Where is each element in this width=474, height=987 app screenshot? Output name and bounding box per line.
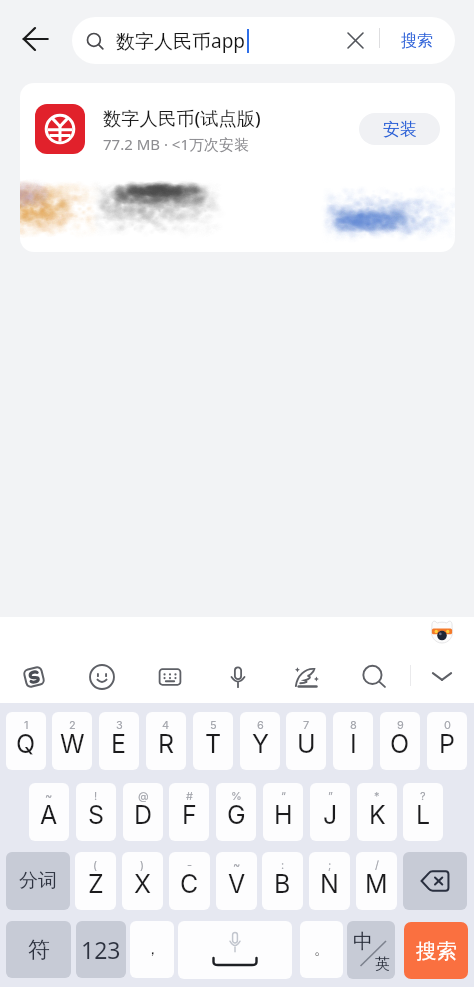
staticText: 3	[116, 718, 123, 731]
button[interactable]: 。	[300, 921, 343, 978]
staticText: ”	[328, 789, 333, 802]
staticText: “	[281, 789, 286, 802]
staticText: )	[140, 858, 145, 871]
staticText: 6	[257, 718, 264, 731]
staticText: S	[88, 800, 105, 830]
staticText: 符	[28, 936, 50, 964]
staticText: *	[374, 789, 380, 802]
button[interactable]: Keyboard layout	[148, 655, 192, 699]
button[interactable]: Chinese English toggle	[347, 921, 395, 979]
staticText: @	[138, 789, 149, 802]
staticText: T	[205, 729, 222, 759]
button[interactable]: 分词	[6, 852, 70, 910]
button[interactable]: ~	[29, 783, 69, 841]
button[interactable]: “	[263, 783, 303, 841]
staticText: A	[40, 800, 58, 830]
staticText: 2	[69, 718, 76, 731]
button[interactable]: Backspace	[403, 852, 467, 910]
button[interactable]: 8	[333, 712, 373, 770]
button[interactable]: ?	[403, 783, 443, 841]
staticText: C	[180, 869, 199, 899]
button[interactable]: ~	[216, 852, 257, 910]
button[interactable]: -	[169, 852, 210, 910]
button[interactable]: %	[216, 783, 256, 841]
staticText: K	[369, 800, 386, 830]
staticText: (	[93, 858, 98, 871]
staticText: V	[228, 869, 246, 899]
button[interactable]: 搜索	[404, 922, 468, 979]
staticText: 数字人民币app	[116, 28, 246, 54]
button[interactable]: 6	[240, 712, 280, 770]
staticText: 英	[375, 955, 390, 974]
button[interactable]: )	[122, 852, 163, 910]
button[interactable]: Search	[352, 655, 396, 699]
button[interactable]: 2	[52, 712, 92, 770]
button[interactable]: 4	[146, 712, 186, 770]
button[interactable]: 安装	[359, 113, 440, 145]
staticText: 安装	[383, 119, 417, 140]
staticText: G	[227, 800, 246, 830]
staticText: #	[186, 789, 193, 802]
button[interactable]: 5	[193, 712, 233, 770]
button[interactable]: !	[76, 783, 116, 841]
staticText: D	[134, 800, 153, 830]
button[interactable]: ;	[309, 852, 350, 910]
staticText: %	[231, 789, 242, 802]
button[interactable]: ”	[310, 783, 350, 841]
staticText: O	[390, 729, 410, 759]
staticText: 搜索	[401, 31, 433, 51]
staticText: J	[323, 800, 338, 830]
staticText: :	[281, 858, 285, 871]
staticText: M	[365, 869, 388, 899]
button[interactable]: 123	[76, 921, 126, 978]
button[interactable]: 3	[99, 712, 139, 770]
staticText: 9	[397, 718, 404, 731]
staticText: Z	[88, 869, 104, 899]
staticText: /	[375, 858, 379, 871]
button[interactable]: (	[75, 852, 116, 910]
staticText: ，	[145, 940, 160, 959]
staticText: U	[297, 729, 316, 759]
button[interactable]: 数字人民币(试点版)	[20, 83, 455, 252]
staticText: 分词	[19, 869, 57, 893]
button[interactable]: Hide keyboard	[420, 654, 464, 698]
button[interactable]: @	[123, 783, 163, 841]
staticText: 数字人民币(试点版)	[103, 105, 261, 130]
button[interactable]: ，	[130, 921, 174, 978]
staticText: 7	[303, 718, 310, 731]
button[interactable]: 7	[286, 712, 326, 770]
button[interactable]: #	[169, 783, 209, 841]
button[interactable]: Handwriting	[284, 655, 328, 699]
staticText: 4	[162, 718, 170, 731]
button[interactable]: Emoji	[80, 655, 124, 699]
staticText: I	[350, 729, 357, 759]
button[interactable]: 搜索	[389, 17, 445, 64]
button[interactable]: Voice input	[216, 655, 260, 699]
staticText: 。	[314, 940, 329, 959]
button[interactable]: 数字人民币app	[72, 17, 455, 64]
staticText: X	[134, 869, 152, 899]
button[interactable]: 1	[6, 712, 46, 770]
staticText: F	[182, 800, 197, 830]
button[interactable]: Sogou input	[12, 655, 56, 699]
button[interactable]: *	[357, 783, 397, 841]
button[interactable]: 0	[427, 712, 467, 770]
staticText: P	[439, 729, 455, 759]
button[interactable]: :	[262, 852, 303, 910]
staticText: 1	[24, 718, 29, 731]
staticText: Q	[16, 729, 36, 759]
staticText: 0	[444, 718, 451, 731]
staticText: !	[94, 789, 98, 802]
staticText: ~	[45, 789, 53, 802]
button[interactable]: Space or voice input	[178, 921, 292, 979]
staticText: 77.2 MB · <1万次安装	[103, 134, 249, 154]
button[interactable]: /	[356, 852, 397, 910]
button[interactable]: Back	[15, 19, 55, 59]
staticText: 8	[350, 718, 357, 731]
staticText: ~	[233, 858, 241, 871]
staticText: B	[274, 869, 291, 899]
button[interactable]: 9	[380, 712, 420, 770]
button[interactable]: 符	[6, 921, 71, 978]
staticText: H	[274, 800, 293, 830]
button[interactable]: Clear text	[335, 20, 375, 60]
